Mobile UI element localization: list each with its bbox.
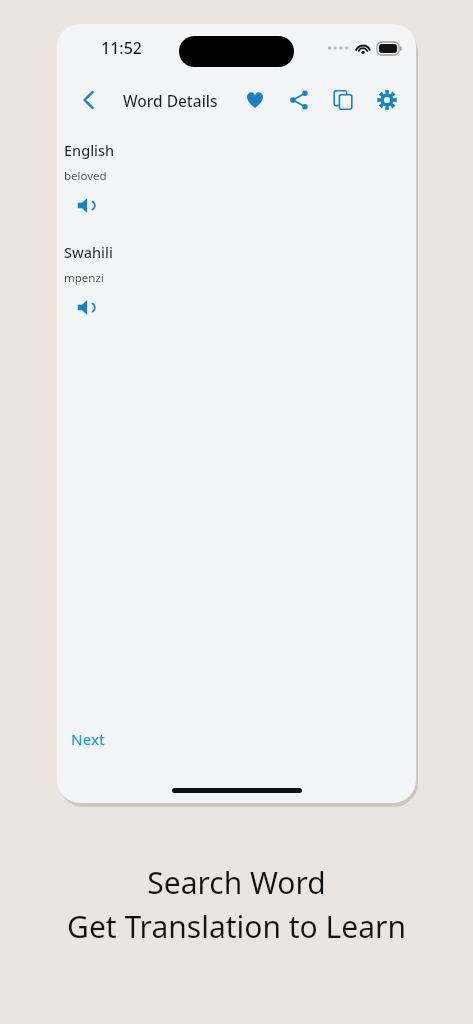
staticText: Get Translation to Learn: [67, 906, 406, 947]
staticText: 11:52: [101, 37, 142, 59]
staticText: beloved: [64, 168, 107, 184]
button[interactable]: Back: [69, 80, 109, 120]
button[interactable]: Play pronunciation of beloved: [71, 190, 101, 220]
button[interactable]: Settings: [365, 78, 409, 122]
staticText: Swahili: [64, 242, 113, 262]
staticText: Next: [71, 729, 105, 749]
button[interactable]: Share: [277, 78, 321, 122]
staticText: English: [64, 140, 115, 160]
button[interactable]: Next: [57, 723, 119, 755]
button[interactable]: Play pronunciation of mpenzi: [71, 292, 101, 322]
button[interactable]: Favorite: [233, 78, 277, 122]
staticText: Word Details: [123, 90, 218, 111]
staticText: Search Word: [147, 862, 326, 903]
staticText: mpenzi: [64, 270, 104, 286]
button[interactable]: Copy: [321, 78, 365, 122]
